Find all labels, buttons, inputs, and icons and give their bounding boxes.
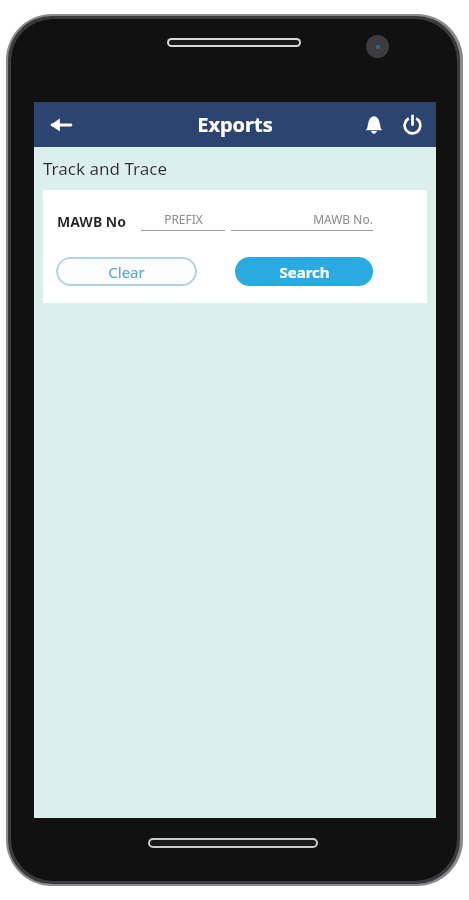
button[interactable]: Prefix input bbox=[141, 211, 225, 231]
button[interactable]: Back bbox=[40, 104, 82, 146]
staticText: PREFIX bbox=[164, 211, 203, 227]
button[interactable]: Search bbox=[235, 257, 373, 286]
staticText: Track and Trace bbox=[43, 157, 167, 180]
staticText: Clear bbox=[108, 262, 145, 282]
staticText: MAWB No bbox=[57, 212, 126, 231]
staticText: MAWB No. bbox=[313, 211, 373, 227]
staticText: Search bbox=[279, 262, 330, 282]
button[interactable]: Notifications bbox=[356, 107, 392, 143]
staticText: Exports bbox=[197, 111, 273, 138]
button[interactable]: Logout bbox=[394, 107, 430, 143]
button[interactable]: Clear bbox=[56, 257, 197, 286]
button[interactable]: MAWB number input bbox=[231, 211, 373, 231]
